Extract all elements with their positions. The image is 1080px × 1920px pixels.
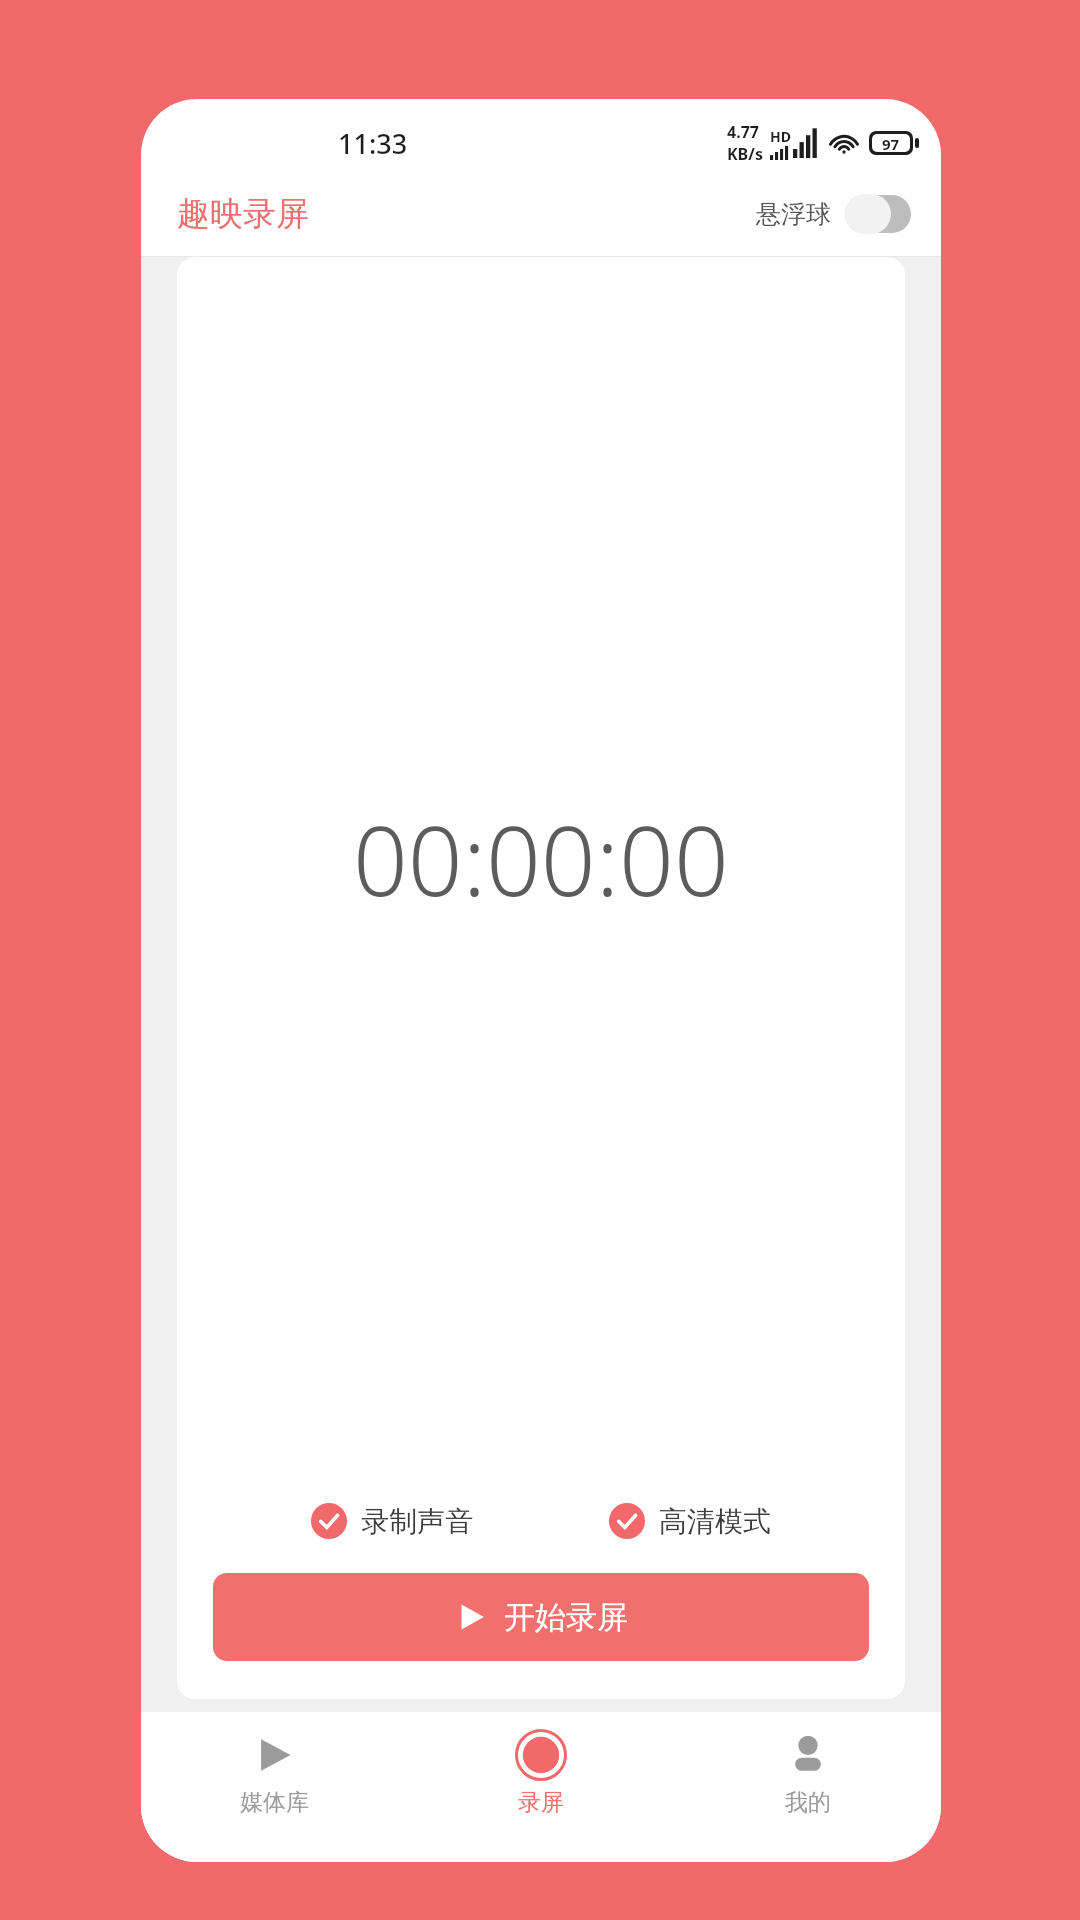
staticText: 我的 <box>785 1788 831 1817</box>
button[interactable]: 媒体库 <box>141 1712 407 1862</box>
button[interactable]: 开始录屏 <box>213 1573 869 1661</box>
staticText: 趣映录屏 <box>177 193 309 235</box>
staticText: HD <box>770 127 791 146</box>
staticText: 11:33 <box>338 125 408 162</box>
button[interactable]: 悬浮球 <box>750 188 917 240</box>
staticText: 媒体库 <box>240 1788 309 1817</box>
button[interactable]: 录屏 <box>407 1712 674 1862</box>
button[interactable]: 我的 <box>674 1712 941 1862</box>
staticText: 高清模式 <box>659 1504 771 1539</box>
staticText: 97 <box>882 134 900 152</box>
staticText: 录制声音 <box>361 1504 473 1539</box>
staticText: KB/s <box>727 143 763 165</box>
staticText: 00:00:00 <box>353 793 729 924</box>
staticText: 开始录屏 <box>504 1598 628 1637</box>
staticText: 录屏 <box>518 1788 564 1817</box>
button[interactable]: 高清模式 <box>605 1499 775 1543</box>
staticText: 4.77 <box>727 121 759 143</box>
staticText: 悬浮球 <box>756 199 831 230</box>
button[interactable]: 录制声音 <box>307 1499 477 1543</box>
